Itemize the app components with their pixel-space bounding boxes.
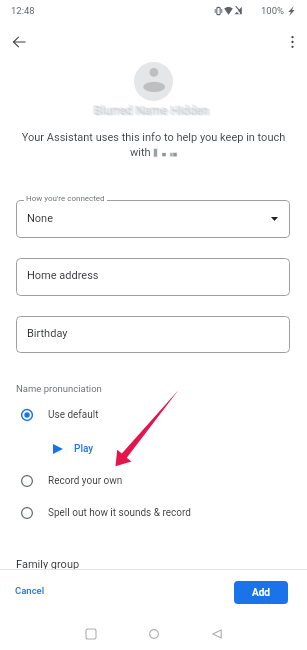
staticText: Cancel [15,585,45,596]
button[interactable]: Cancel [7,577,53,604]
button[interactable]: Home [132,615,175,650]
staticText: Home address [27,269,99,282]
button[interactable]: Spell out how it sounds & record [0,501,307,525]
staticText: None [27,212,54,225]
staticText: Add [252,587,270,599]
staticText: Blurred Name Hidden [96,105,212,119]
button[interactable]: None [16,200,290,238]
staticText: with [130,146,151,159]
button[interactable]: Use default [0,403,307,427]
staticText: Your Assistant uses this info to help yo… [0,131,307,144]
button[interactable]: Recent apps [69,615,112,650]
staticText: Blurred Name Hidden [92,103,208,117]
staticText: Spell out how it sounds & record [48,507,191,519]
button[interactable]: Navigate up [5,28,33,56]
staticText: Name pronunciation [16,383,102,394]
staticText: Blurred Name Hidden [95,104,211,118]
button[interactable]: Play [0,437,307,461]
staticText: 100% [261,5,284,16]
staticText: Family group [16,558,80,571]
button[interactable]: Record your own [0,469,307,493]
button[interactable]: Birthday [16,316,290,353]
staticText: Play [74,443,94,455]
button[interactable]: Add [234,581,288,604]
staticText: 12:48 [11,5,35,16]
button[interactable]: Back [195,615,238,650]
staticText: How you're connected [26,194,105,203]
button[interactable]: More options [278,28,306,56]
staticText: Use default [48,409,99,421]
button[interactable]: Home address [16,258,290,296]
staticText: Birthday [27,327,68,340]
staticText: Record your own [48,475,123,487]
staticText: Blurred Name Hidden [93,104,209,118]
staticText: Blurred Name Hidden [94,104,210,118]
